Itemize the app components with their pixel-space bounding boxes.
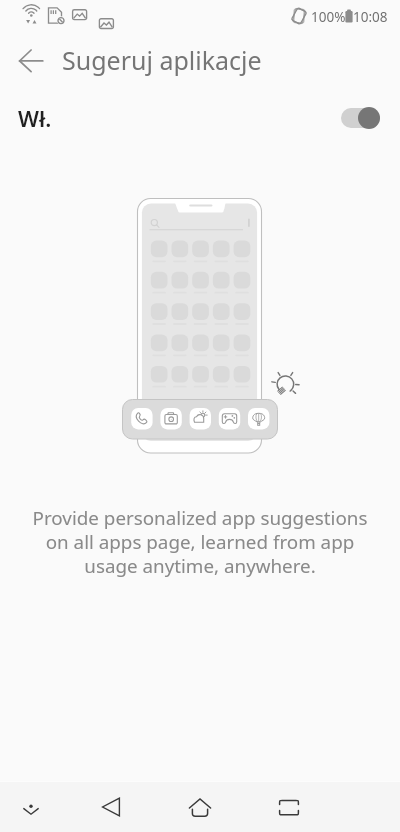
button[interactable]: Recent apps (263, 781, 315, 832)
staticText: Provide personalized app suggestions on … (8, 505, 392, 579)
staticText: Wł. (18, 103, 52, 133)
staticText: Sugeruj aplikacje (62, 43, 262, 77)
button[interactable]: Wł. (0, 94, 400, 142)
button[interactable]: Back (3, 33, 59, 89)
staticText: 100% (311, 8, 346, 26)
staticText: 10:08 (353, 8, 388, 26)
button[interactable]: Back (85, 781, 137, 832)
button[interactable]: Hide navigation bar (5, 781, 57, 832)
button[interactable]: Home (174, 781, 226, 832)
